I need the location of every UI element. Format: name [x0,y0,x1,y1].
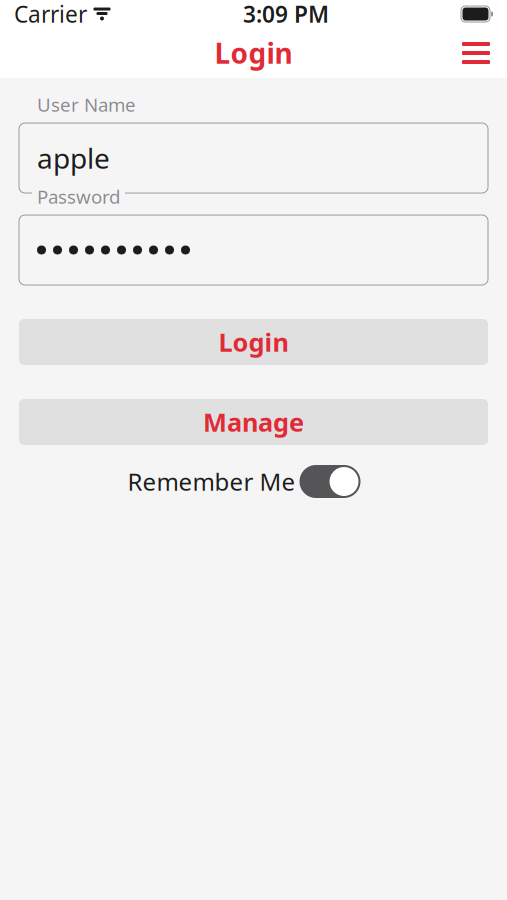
staticText: Carrier [14,0,87,29]
button[interactable]: Manage [19,399,488,445]
staticText: Manage [203,405,304,439]
staticText: Login [218,325,288,359]
staticText: 3:09 PM [243,0,329,29]
button[interactable]: Remember Me toggle, on [295,465,360,498]
button[interactable]: Menu [454,31,498,75]
staticText: apple [37,139,110,177]
staticText: User Name [37,92,136,117]
button[interactable]: Login [19,319,488,365]
staticText: Password [37,184,120,209]
staticText: Login [214,34,292,72]
staticText: Remember Me [127,466,295,497]
